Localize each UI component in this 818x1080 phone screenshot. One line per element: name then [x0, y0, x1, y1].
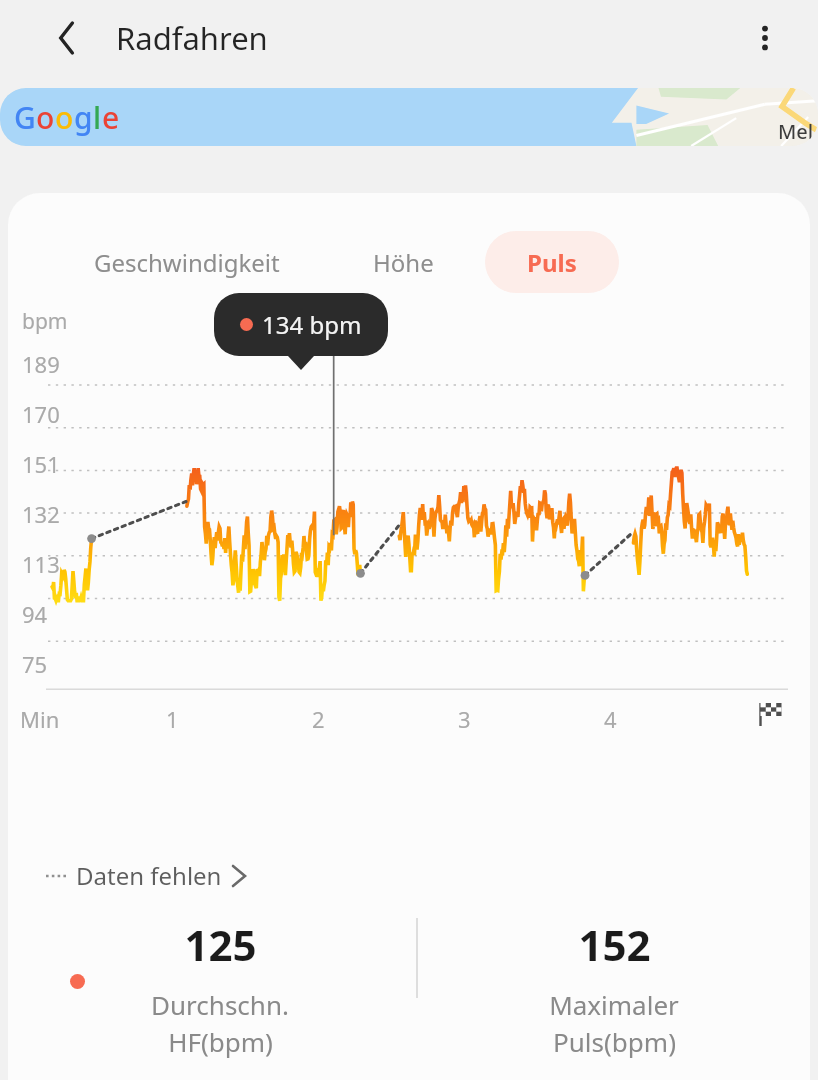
staticText: Min — [20, 704, 60, 734]
button[interactable]: Route map — [0, 88, 818, 146]
staticText: 94 — [22, 599, 48, 629]
staticText: G — [14, 97, 36, 138]
staticText: l — [93, 97, 102, 138]
staticText: 1 — [166, 704, 179, 734]
staticText: o — [36, 97, 55, 138]
staticText: Geschwindigkeit — [94, 246, 280, 279]
staticText: Mel — [778, 118, 814, 145]
staticText: 152 — [578, 916, 651, 973]
staticText: Durchschn. — [151, 987, 289, 1022]
staticText: 125 — [184, 916, 257, 973]
staticText: Höhe — [373, 246, 434, 279]
staticText: 4 — [604, 704, 617, 734]
button[interactable]: Puls — [485, 231, 619, 293]
staticText: g — [74, 97, 93, 138]
staticText: 113 — [22, 549, 60, 579]
staticText: HF(bpm) — [168, 1024, 273, 1059]
button[interactable]: 152 — [418, 912, 810, 1080]
staticText: 134 bpm — [262, 308, 362, 341]
staticText: Puls — [527, 246, 577, 279]
staticText: 189 — [22, 349, 60, 379]
staticText: 170 — [22, 399, 60, 429]
staticText: 2 — [312, 704, 325, 734]
staticText: bpm — [22, 307, 68, 336]
button[interactable]: Back — [38, 9, 96, 67]
staticText: 75 — [22, 649, 48, 679]
staticText: Puls(bpm) — [553, 1024, 676, 1059]
staticText: Daten fehlen — [76, 859, 222, 892]
staticText: 151 — [22, 449, 60, 479]
button[interactable]: Höhe — [363, 236, 444, 289]
staticText: e — [102, 97, 120, 138]
button[interactable]: Geschwindigkeit — [84, 236, 290, 289]
staticText: o — [55, 97, 74, 138]
button[interactable]: 125 — [24, 912, 416, 1080]
staticText: 132 — [22, 499, 60, 529]
staticText: Radfahren — [116, 17, 268, 59]
button[interactable]: 134 bpm — [214, 293, 388, 356]
staticText: 3 — [458, 704, 471, 734]
staticText: Maximaler — [549, 987, 679, 1022]
button[interactable]: Daten fehlen — [42, 853, 250, 898]
button[interactable]: More options — [736, 9, 794, 67]
